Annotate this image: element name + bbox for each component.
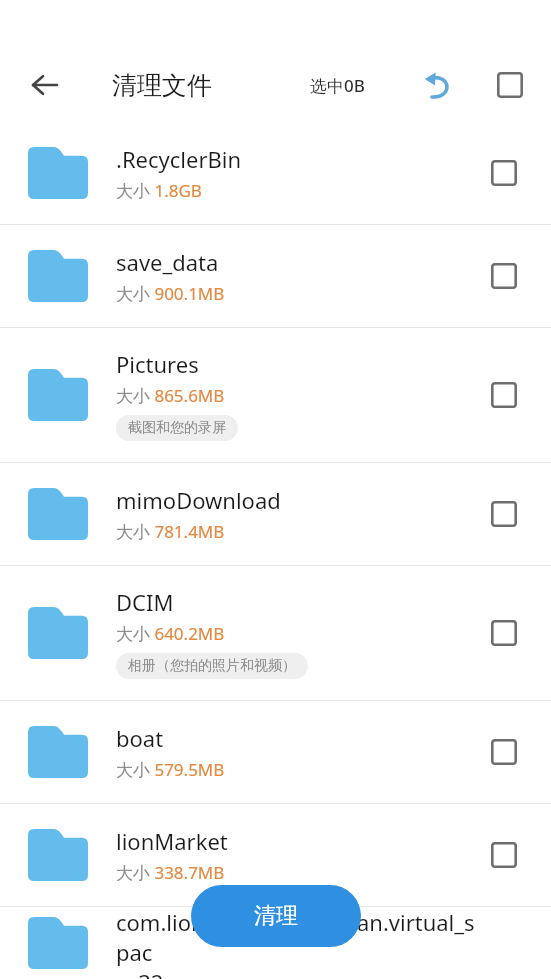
staticText: save_data (116, 247, 219, 277)
button[interactable]: DCIM (0, 566, 551, 700)
staticText: com.lionmobi.powerclean.virtual_spac e_3… (116, 907, 479, 979)
staticText: lionMarket (116, 826, 228, 856)
button[interactable]: boat (0, 701, 551, 803)
staticText: 大小 579.5MB (116, 758, 225, 781)
staticText: 相册（您拍的照片和视频） (128, 657, 296, 675)
button[interactable]: Select save_data (479, 251, 529, 301)
staticText: 大小 640.2MB (116, 622, 225, 645)
button[interactable]: Undo (412, 59, 464, 111)
staticText: boat (116, 723, 164, 753)
staticText: 大小 1.8GB (116, 179, 202, 202)
button[interactable]: 清理 (191, 885, 361, 947)
button[interactable]: save_data (0, 225, 551, 327)
button[interactable]: Back (18, 59, 70, 111)
staticText: 清理 (254, 902, 298, 930)
button[interactable]: Pictures (0, 328, 551, 462)
button[interactable]: mimoDownload (0, 463, 551, 565)
staticText: .RecyclerBin (116, 144, 242, 174)
button[interactable]: Select all (485, 60, 535, 110)
staticText: 大小 781.4MB (116, 520, 225, 543)
button[interactable]: Select Pictures (479, 370, 529, 420)
button[interactable]: Select .RecyclerBin (479, 148, 529, 198)
button[interactable]: Select boat (479, 727, 529, 777)
staticText: 截图和您的录屏 (128, 419, 226, 437)
button[interactable]: Select DCIM (479, 608, 529, 658)
button[interactable]: Select mimoDownload (479, 489, 529, 539)
staticText: DCIM (116, 587, 174, 617)
staticText: Pictures (116, 349, 199, 379)
button[interactable]: Select lionMarket (479, 830, 529, 880)
button[interactable]: lionMarket (0, 804, 551, 906)
staticText: 大小 865.6MB (116, 384, 225, 407)
button[interactable]: com.lionmobi.powerclean.virtual_spac e_3… (0, 907, 551, 979)
staticText: 选中0B (310, 74, 365, 97)
staticText: 清理文件 (112, 70, 212, 101)
staticText: 大小 900.1MB (116, 282, 225, 305)
staticText: 大小 338.7MB (116, 861, 225, 884)
staticText: mimoDownload (116, 485, 281, 515)
button[interactable]: .RecyclerBin (0, 122, 551, 224)
